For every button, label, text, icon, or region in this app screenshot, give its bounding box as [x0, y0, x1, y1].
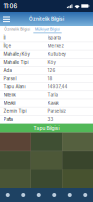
button[interactable]: Araç 2 — [15, 188, 31, 202]
staticText: Tarla — [47, 92, 57, 97]
staticText: Isparta — [47, 35, 60, 40]
button[interactable]: Araç 3 — [31, 188, 46, 202]
staticText: Köy — [47, 60, 55, 65]
staticText: Öznitelik Bilgisi — [29, 16, 64, 22]
staticText: Mahalle/Köy — [3, 51, 29, 57]
staticText: 11:06 — [3, 2, 17, 10]
staticText: Nitelik — [3, 92, 15, 97]
staticText: Merkez — [47, 43, 63, 49]
staticText: 126 — [47, 68, 55, 73]
staticText: Mahalle Tipi — [3, 60, 28, 65]
staticText: Parselsiz — [47, 108, 65, 114]
staticText: Ada — [3, 68, 11, 73]
staticText: Kutlubey — [47, 51, 65, 57]
staticText: 18 — [47, 76, 52, 81]
staticText: Kavak — [47, 100, 58, 106]
staticText: Zemin Tipi — [3, 108, 26, 114]
staticText: 14937,44 — [47, 84, 67, 89]
staticText: Tapu Bilgisi — [33, 125, 59, 131]
staticText: Mevkii — [3, 100, 15, 106]
staticText: İl — [3, 35, 5, 40]
staticText: Tapu Alanı — [3, 84, 25, 89]
button[interactable]: Menü — [0, 12, 13, 26]
button[interactable]: Araç 1 — [0, 188, 15, 202]
button[interactable]: Araç 5 — [62, 188, 77, 202]
staticText: Parsel — [3, 76, 16, 81]
staticText: 33 — [47, 117, 53, 122]
button[interactable]: Araç 4 — [46, 188, 62, 202]
button[interactable]: Tapu Bilgisi — [0, 124, 93, 133]
button[interactable]: Araç 6 — [77, 188, 93, 202]
button[interactable]: Mülkiyet Bilgisi — [32, 26, 63, 33]
button[interactable]: Öznitelik Bilgisi — [2, 26, 32, 33]
staticText: İlçe — [3, 43, 11, 49]
staticText: Mülkiyet Bilgisi — [35, 27, 60, 31]
staticText: Pafta — [3, 117, 12, 122]
staticText: Öznitelik Bilgisi — [4, 27, 30, 31]
